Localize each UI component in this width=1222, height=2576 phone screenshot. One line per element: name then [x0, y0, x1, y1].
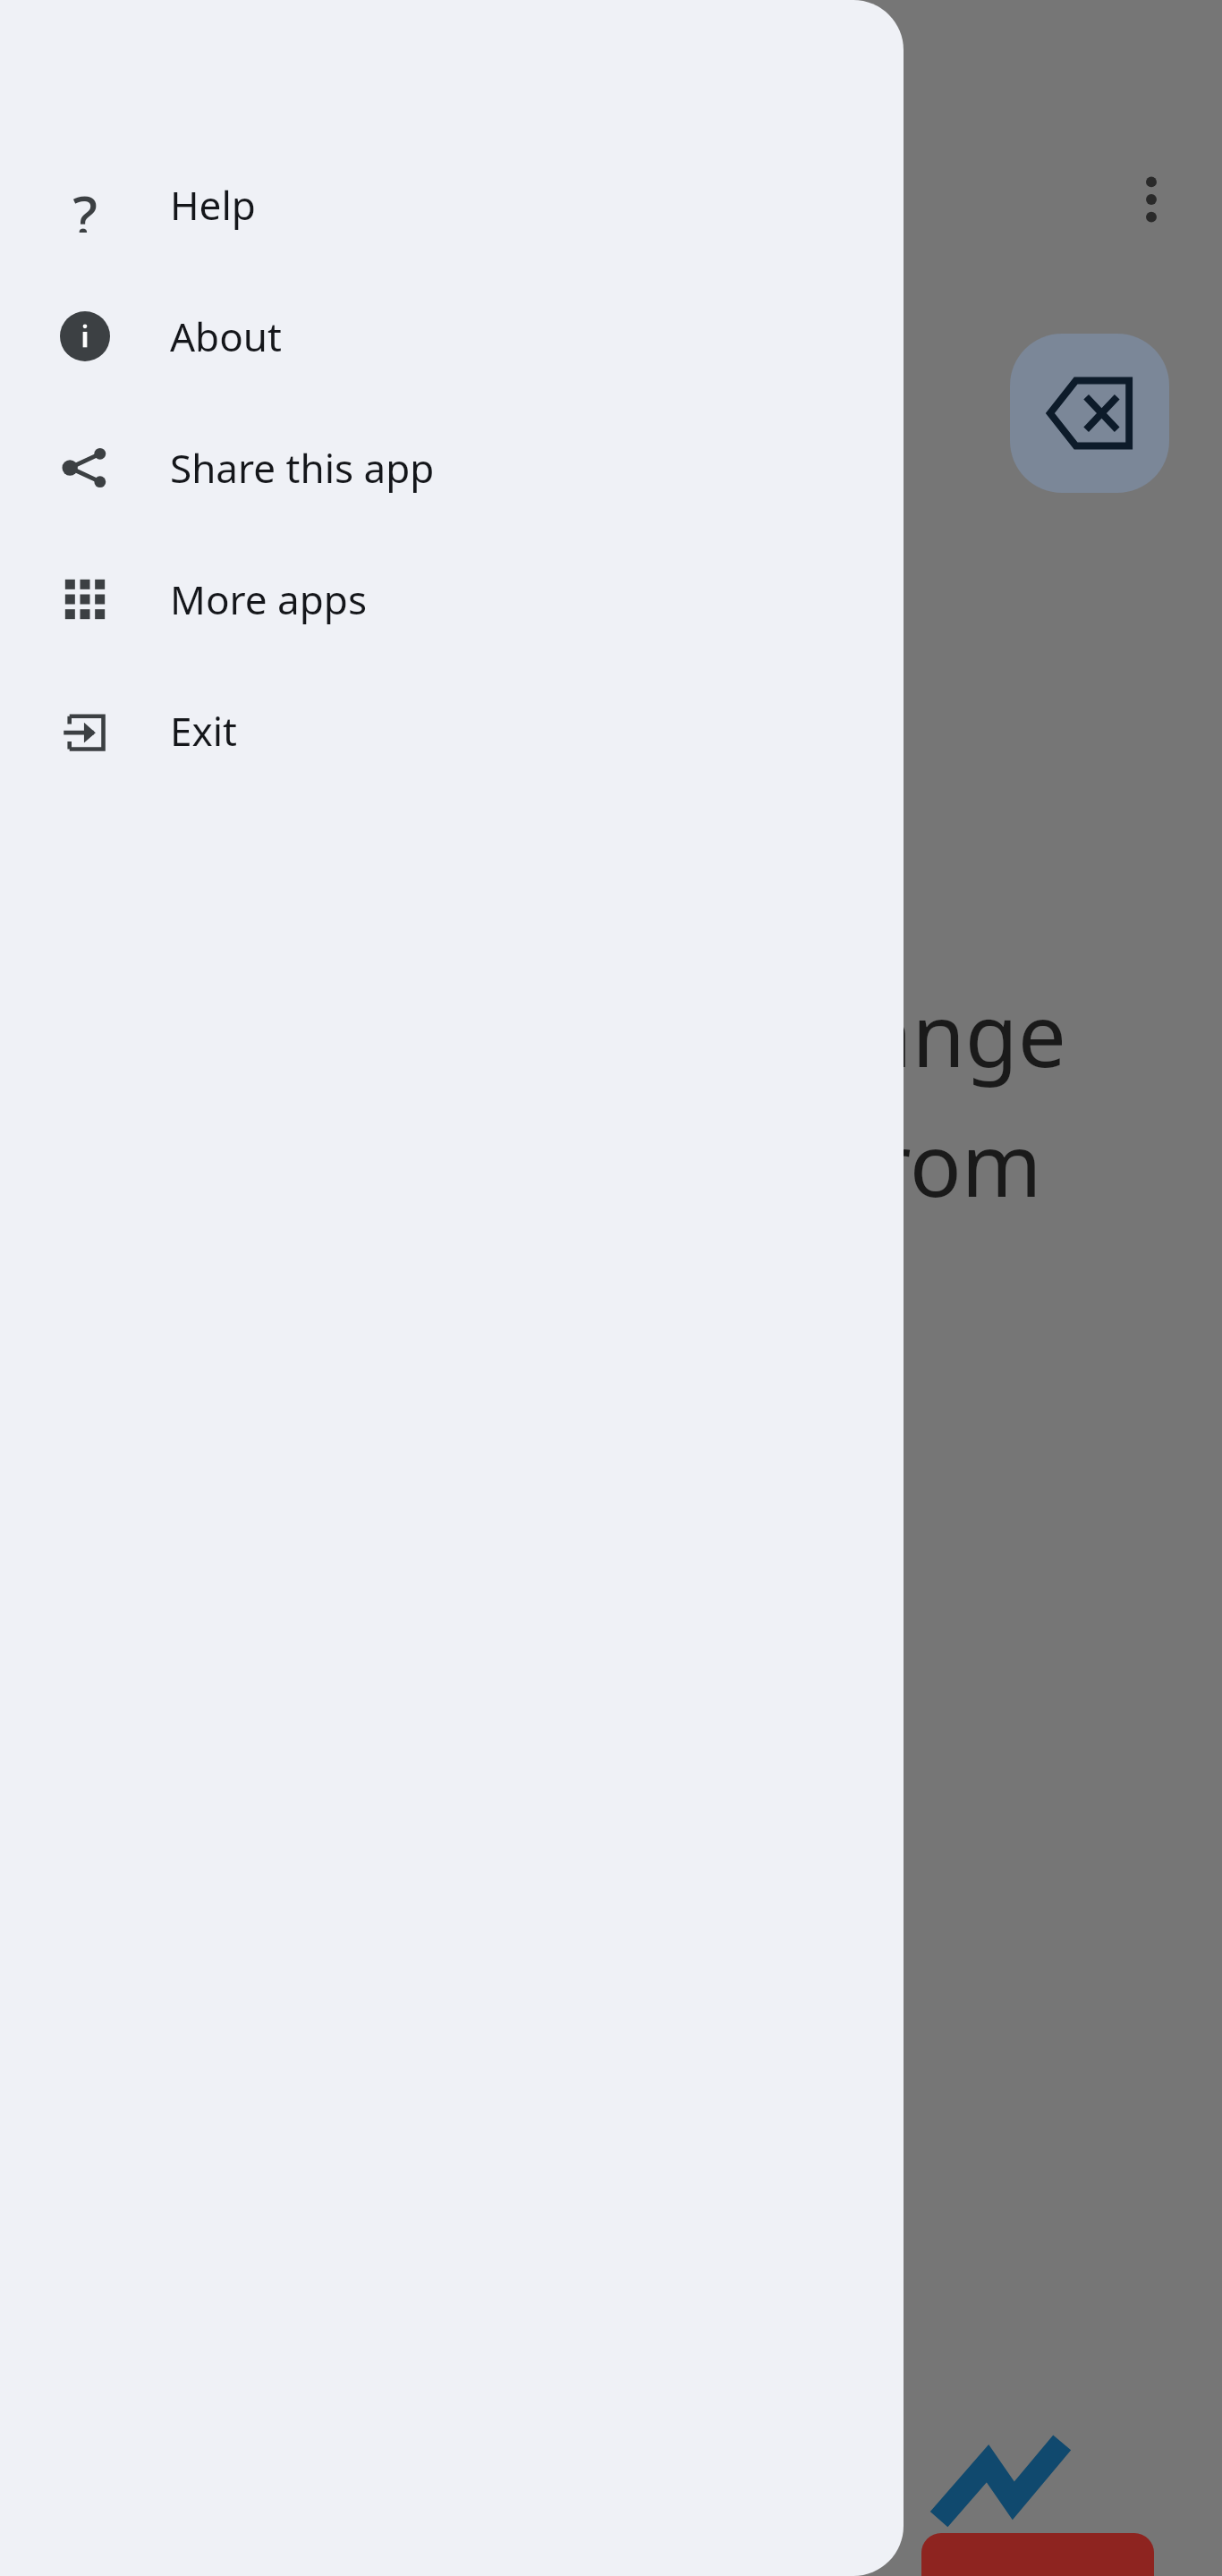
staticText: …from	[778, 1105, 1042, 1222]
button[interactable]: ?	[0, 139, 904, 270]
button[interactable]: Chart	[930, 2424, 1073, 2540]
button[interactable]: Exit	[0, 665, 904, 796]
staticText: …Range	[743, 975, 1067, 1092]
button[interactable]: More options	[1102, 150, 1201, 249]
button[interactable]: Backspace	[1010, 334, 1169, 493]
staticText: Help	[170, 178, 256, 232]
button[interactable]: Clear	[921, 2533, 1154, 2576]
button[interactable]: Share this app	[0, 402, 904, 533]
button[interactable]: About	[0, 270, 904, 402]
staticText: ?	[72, 177, 98, 233]
staticText: Exit	[170, 704, 237, 758]
staticText: About	[170, 309, 282, 363]
staticText: Share this app	[170, 441, 435, 495]
staticText: More apps	[170, 572, 367, 626]
button[interactable]: More apps	[0, 533, 904, 665]
